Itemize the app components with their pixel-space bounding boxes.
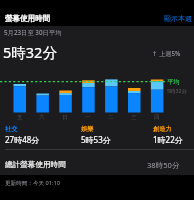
staticText: 27時48分 (5, 134, 40, 145)
staticText: 5時53分 (81, 134, 111, 145)
staticText: 5時32分 (167, 87, 188, 94)
staticText: 二 (108, 114, 114, 121)
button[interactable]: 娛樂 (81, 125, 111, 145)
staticText: 總計螢幕使用時間 (5, 160, 66, 170)
staticText: 5時32分 (3, 42, 57, 62)
button[interactable]: 螢幕使用時間 (0, 8, 45, 26)
staticText: 創造力 (153, 125, 172, 133)
button[interactable]: 創造力 (153, 125, 183, 145)
staticText: 社交 (5, 125, 18, 133)
button[interactable]: 顯示本週 (160, 8, 188, 26)
staticText: 六 (39, 114, 45, 121)
staticText: 五 (17, 114, 23, 121)
staticText: 5月23日至 30日平均 (4, 28, 62, 37)
staticText: 平均 (167, 78, 180, 86)
button[interactable]: 社交 (5, 125, 40, 145)
staticText: ↑ 上週5% (152, 49, 181, 58)
staticText: 日 (62, 114, 68, 121)
staticText: 四 (154, 114, 160, 121)
button[interactable]: 總計螢幕使用時間 (0, 150, 194, 175)
staticText: 三 (131, 114, 137, 121)
staticText: 螢幕使用時間 (5, 14, 50, 23)
staticText: 1時22分 (153, 134, 183, 145)
staticText: 38時50分 (147, 160, 180, 170)
staticText: 一 (85, 114, 91, 121)
staticText: 娛樂 (81, 125, 94, 133)
staticText: 更新時間：今天 01:10 (5, 179, 60, 187)
staticText: 顯示本週 (164, 14, 192, 23)
